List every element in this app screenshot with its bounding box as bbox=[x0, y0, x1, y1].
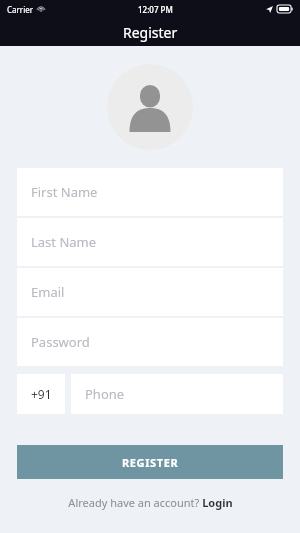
staticText: Already have an account? Login bbox=[68, 495, 233, 510]
button[interactable]: Already have an account? Login bbox=[62, 493, 239, 512]
button[interactable]: REGISTER bbox=[17, 445, 283, 479]
staticText: Register bbox=[123, 23, 178, 42]
staticText: Password bbox=[31, 333, 90, 351]
staticText: Last Name bbox=[31, 233, 97, 251]
button[interactable]: Email bbox=[17, 268, 283, 316]
staticText: 12:07 PM bbox=[138, 4, 173, 15]
staticText: Carrier bbox=[7, 4, 34, 15]
staticText: Email bbox=[31, 283, 65, 301]
staticText: REGISTER bbox=[122, 455, 179, 470]
button[interactable]: Last Name bbox=[17, 218, 283, 266]
staticText: Phone bbox=[85, 385, 125, 403]
staticText: +91 bbox=[31, 386, 52, 402]
button[interactable]: Password bbox=[17, 318, 283, 366]
button[interactable]: First Name bbox=[17, 168, 283, 216]
staticText: First Name bbox=[31, 183, 98, 201]
button[interactable]: Phone bbox=[71, 374, 283, 414]
button[interactable]: Profile photo bbox=[107, 64, 193, 150]
button[interactable]: +91 bbox=[17, 374, 65, 414]
